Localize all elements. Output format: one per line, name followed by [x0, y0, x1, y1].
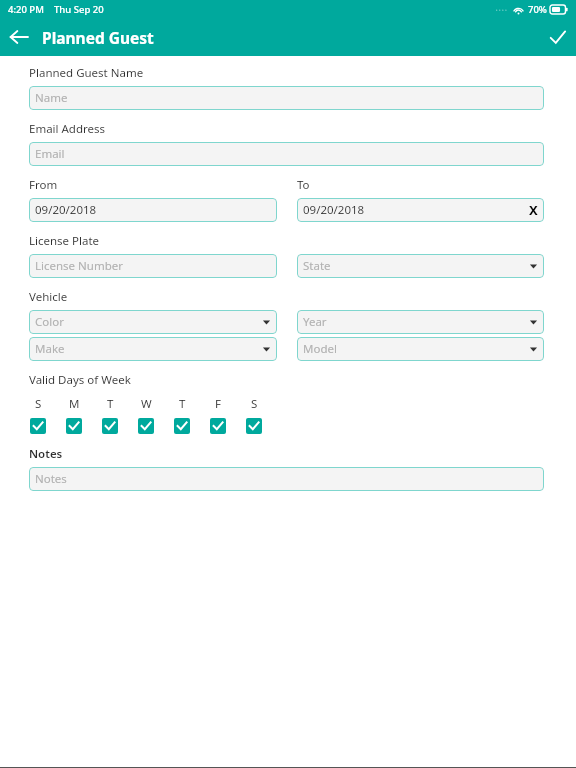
- button[interactable]: Model: [297, 337, 544, 361]
- button[interactable]: Name: [29, 86, 544, 110]
- button[interactable]: Toggle T: [174, 418, 190, 434]
- staticText: S: [35, 396, 42, 412]
- staticText: F: [215, 396, 221, 412]
- button[interactable]: 09/20/2018: [29, 198, 277, 222]
- button[interactable]: Toggle S: [30, 418, 46, 434]
- staticText: Model: [303, 341, 337, 357]
- staticText: Email Address: [29, 121, 106, 137]
- staticText: T: [179, 396, 186, 412]
- staticText: S: [251, 396, 258, 412]
- staticText: Color: [35, 314, 64, 330]
- staticText: Make: [35, 341, 65, 357]
- staticText: State: [303, 258, 331, 274]
- staticText: 09/20/2018: [35, 202, 97, 218]
- staticText: 70%: [528, 3, 547, 16]
- button[interactable]: Toggle T: [102, 418, 118, 434]
- staticText: X: [529, 201, 538, 219]
- button[interactable]: Back: [0, 18, 38, 56]
- staticText: Notes: [29, 446, 63, 462]
- button[interactable]: Toggle F: [210, 418, 226, 434]
- staticText: License Plate: [29, 233, 100, 249]
- staticText: W: [141, 396, 152, 412]
- staticText: Year: [303, 314, 327, 330]
- button[interactable]: Toggle W: [138, 418, 154, 434]
- button[interactable]: Year: [297, 310, 544, 334]
- staticText: Notes: [35, 471, 67, 487]
- button[interactable]: Save: [538, 18, 576, 56]
- staticText: 09/20/2018: [303, 202, 365, 218]
- staticText: Vehicle: [29, 289, 68, 305]
- staticText: Name: [35, 90, 68, 106]
- staticText: License Number: [35, 258, 123, 274]
- button[interactable]: License Number: [29, 254, 277, 278]
- button[interactable]: State: [297, 254, 544, 278]
- staticText: From: [29, 177, 58, 193]
- button[interactable]: Toggle S: [246, 418, 262, 434]
- staticText: Planned Guest Name: [29, 65, 144, 81]
- button[interactable]: Email: [29, 142, 544, 166]
- staticText: 4:20 PM: [8, 3, 44, 16]
- staticText: Thu Sep 20: [54, 3, 104, 16]
- staticText: Planned Guest: [42, 27, 154, 48]
- staticText: M: [69, 396, 80, 412]
- staticText: Valid Days of Week: [29, 372, 131, 388]
- button[interactable]: Color: [29, 310, 277, 334]
- button[interactable]: Make: [29, 337, 277, 361]
- staticText: Email: [35, 146, 65, 162]
- staticText: T: [107, 396, 114, 412]
- button[interactable]: Toggle M: [66, 418, 82, 434]
- button[interactable]: 09/20/2018: [297, 198, 544, 222]
- staticText: To: [297, 177, 310, 193]
- button[interactable]: Notes: [29, 467, 544, 491]
